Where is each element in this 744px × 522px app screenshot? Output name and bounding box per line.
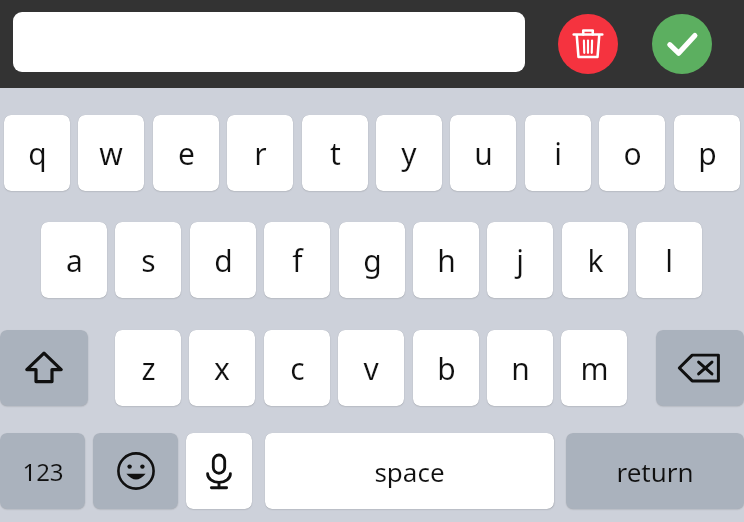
staticText: t bbox=[330, 133, 341, 174]
staticText: a bbox=[66, 240, 83, 281]
staticText: q bbox=[28, 133, 47, 174]
staticText: i bbox=[554, 133, 562, 174]
button[interactable]: Backspace bbox=[656, 330, 744, 406]
button[interactable]: k bbox=[562, 222, 628, 298]
staticText: h bbox=[437, 240, 456, 281]
button[interactable]: Voice input bbox=[186, 433, 252, 509]
staticText: o bbox=[623, 133, 642, 174]
button[interactable]: Confirm bbox=[652, 14, 712, 74]
button[interactable]: v bbox=[338, 330, 404, 406]
staticText: r bbox=[254, 133, 267, 174]
button[interactable]: e bbox=[153, 115, 219, 191]
staticText: x bbox=[214, 348, 230, 389]
staticText: d bbox=[214, 240, 233, 281]
staticText: w bbox=[99, 133, 123, 174]
button[interactable]: u bbox=[450, 115, 516, 191]
button[interactable]: i bbox=[525, 115, 591, 191]
staticText: space bbox=[374, 454, 445, 489]
button[interactable]: h bbox=[413, 222, 479, 298]
button[interactable]: l bbox=[636, 222, 702, 298]
staticText: k bbox=[587, 240, 604, 281]
button[interactable]: Shift bbox=[0, 330, 88, 406]
button[interactable] bbox=[13, 12, 525, 72]
staticText: g bbox=[363, 240, 382, 281]
button[interactable]: q bbox=[4, 115, 70, 191]
staticText: e bbox=[178, 133, 195, 174]
staticText: y bbox=[401, 133, 417, 174]
button[interactable]: r bbox=[227, 115, 293, 191]
staticText: f bbox=[292, 240, 303, 281]
staticText: 123 bbox=[22, 455, 64, 488]
button[interactable]: z bbox=[115, 330, 181, 406]
button[interactable]: w bbox=[78, 115, 144, 191]
button[interactable]: n bbox=[487, 330, 553, 406]
staticText: v bbox=[363, 348, 379, 389]
staticText: u bbox=[474, 133, 493, 174]
button[interactable]: f bbox=[264, 222, 330, 298]
button[interactable]: d bbox=[190, 222, 256, 298]
button[interactable]: b bbox=[413, 330, 479, 406]
button[interactable]: c bbox=[264, 330, 330, 406]
button[interactable]: a bbox=[41, 222, 107, 298]
button[interactable]: return bbox=[566, 433, 744, 509]
button[interactable]: space bbox=[265, 433, 554, 509]
button[interactable]: y bbox=[376, 115, 442, 191]
staticText: return bbox=[616, 454, 694, 489]
button[interactable]: 123 bbox=[0, 433, 85, 509]
button[interactable]: o bbox=[599, 115, 665, 191]
button[interactable]: g bbox=[339, 222, 405, 298]
staticText: m bbox=[580, 348, 609, 389]
staticText: p bbox=[698, 133, 717, 174]
button[interactable]: t bbox=[302, 115, 368, 191]
staticText: c bbox=[290, 348, 305, 389]
staticText: l bbox=[665, 240, 673, 281]
button[interactable]: p bbox=[674, 115, 740, 191]
button[interactable]: j bbox=[487, 222, 553, 298]
button[interactable]: x bbox=[189, 330, 255, 406]
button[interactable]: m bbox=[561, 330, 627, 406]
button[interactable]: Delete bbox=[558, 14, 618, 74]
button[interactable]: Emoji bbox=[93, 433, 178, 509]
button[interactable]: s bbox=[115, 222, 181, 298]
staticText: n bbox=[511, 348, 530, 389]
staticText: b bbox=[437, 348, 456, 389]
staticText: j bbox=[516, 240, 524, 281]
staticText: z bbox=[141, 348, 156, 389]
staticText: s bbox=[141, 240, 156, 281]
